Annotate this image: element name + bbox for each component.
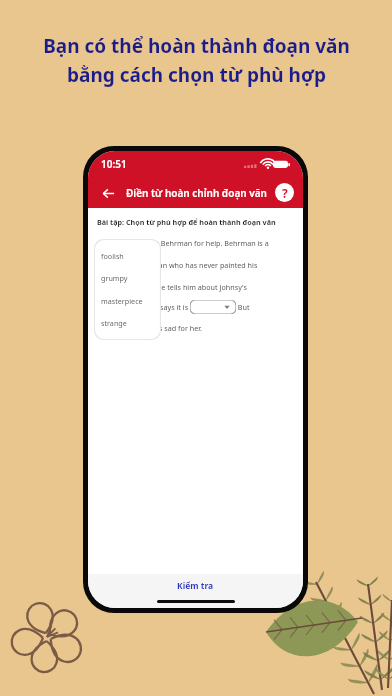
staticText: a, he says it is bbox=[97, 302, 190, 312]
staticText: strange bbox=[101, 318, 127, 328]
staticText: Kiểm tra bbox=[177, 580, 214, 592]
staticText: hen Sue tells him about Johnsy's bbox=[97, 282, 247, 292]
staticText: Bài tập: Chọn từ phù hợp để hoàn thành đ… bbox=[97, 217, 276, 227]
staticText: Bạn có thể hoàn thành đoạn văn bbox=[43, 33, 350, 59]
staticText: ? bbox=[282, 185, 288, 201]
button[interactable]: grumpy bbox=[101, 268, 154, 288]
button[interactable]: Choose a word bbox=[190, 300, 236, 314]
button[interactable]: Kiểm tra bbox=[88, 574, 303, 608]
button[interactable]: masterpiece bbox=[101, 291, 154, 311]
staticText: foolish bbox=[101, 251, 124, 261]
staticText: Sue decides to ask Behrman for help. Beh… bbox=[97, 238, 269, 248]
staticText: bằng cách chọn từ phù hợp bbox=[67, 62, 326, 88]
button[interactable]: strange bbox=[101, 313, 154, 333]
button[interactable]: foolish bbox=[101, 246, 154, 266]
staticText: d man who has never painted his bbox=[97, 260, 258, 270]
staticText: grumpy bbox=[101, 273, 128, 283]
staticText: 10:51 bbox=[101, 157, 127, 171]
staticText: Điền từ hoàn chỉnh đoạn văn bbox=[126, 186, 267, 200]
staticText: an feels sad for her. bbox=[97, 323, 202, 333]
button[interactable]: Back bbox=[97, 182, 119, 204]
staticText: masterpiece bbox=[101, 296, 143, 306]
staticText: But bbox=[236, 302, 250, 312]
button[interactable]: Help bbox=[275, 183, 294, 202]
